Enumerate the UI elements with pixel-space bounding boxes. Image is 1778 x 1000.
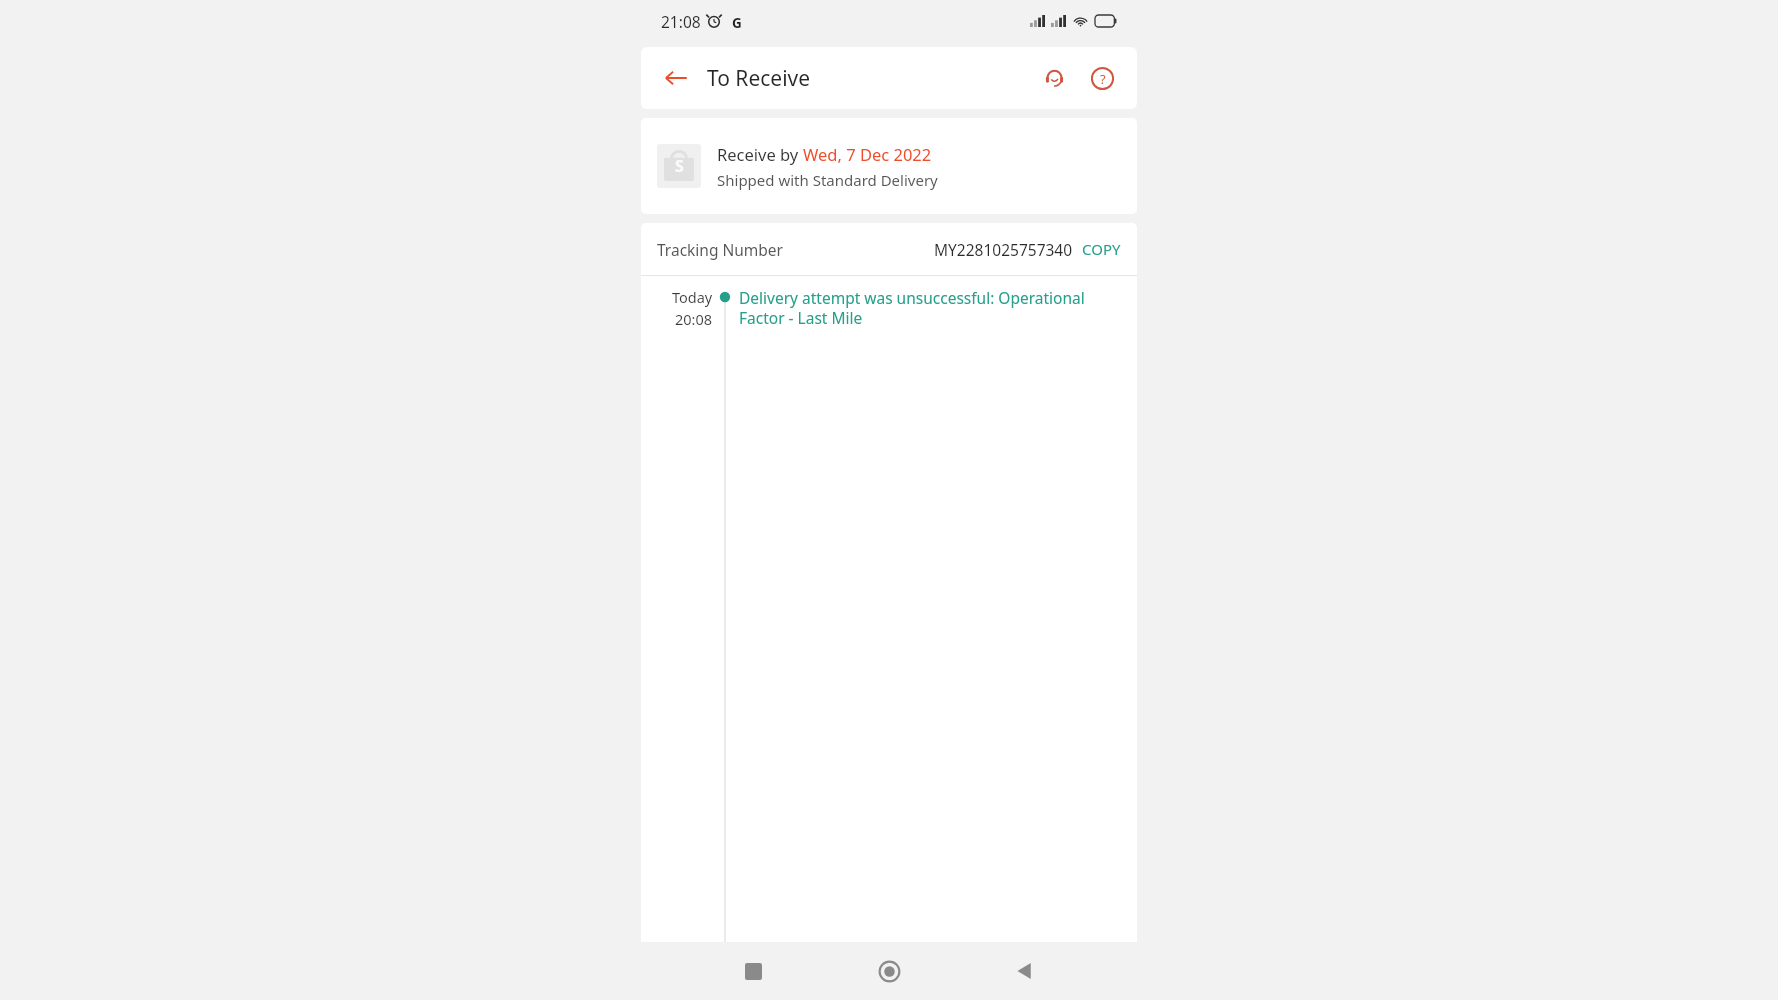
staticText: Today: [672, 287, 713, 307]
staticText: ?: [1100, 70, 1106, 88]
staticText: MY2281025757340: [934, 239, 1073, 260]
staticText: 20:08: [675, 309, 713, 329]
staticText: Tracking Number: [657, 239, 784, 260]
button[interactable]: Recent apps: [731, 949, 775, 993]
button[interactable]: Home: [867, 949, 911, 993]
button[interactable]: Customer service: [1035, 59, 1073, 97]
button[interactable]: S: [641, 118, 1137, 214]
button[interactable]: COPY: [1082, 239, 1121, 259]
staticText: 21:08: [661, 11, 701, 32]
staticText: Wed, 7 Dec 2022: [803, 143, 932, 165]
staticText: Receive by: [717, 143, 803, 165]
staticText: Shipped with Standard Delivery: [717, 170, 938, 190]
staticText: S: [675, 155, 684, 177]
staticText: To Receive: [707, 64, 811, 93]
staticText: Delivery attempt was unsuccessful: Opera…: [739, 287, 1121, 328]
button[interactable]: Help: [1083, 59, 1121, 97]
staticText: G: [732, 14, 742, 29]
button[interactable]: Back: [659, 61, 693, 95]
button[interactable]: Back: [1003, 949, 1047, 993]
staticText: COPY: [1082, 239, 1121, 259]
